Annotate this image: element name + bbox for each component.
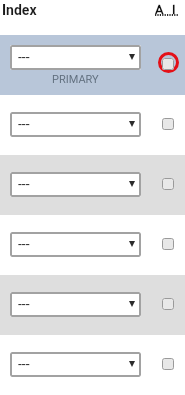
button[interactable]: Select row [155, 51, 181, 77]
button[interactable]: Select row [155, 351, 181, 377]
button[interactable]: --- [10, 232, 141, 257]
button[interactable]: --- [10, 172, 141, 197]
staticText: PRIMARY [52, 73, 99, 86]
staticText: --- [18, 296, 30, 312]
staticText: --- [18, 236, 30, 252]
button[interactable]: --- [0, 95, 185, 155]
staticText: --- [18, 356, 30, 372]
staticText: --- [18, 49, 30, 65]
staticText: I [172, 2, 176, 17]
button[interactable]: Text options [155, 2, 181, 20]
button[interactable]: --- [10, 352, 141, 377]
button[interactable]: Select row [155, 111, 181, 137]
button[interactable]: --- [10, 292, 141, 317]
button[interactable]: Select row [155, 231, 181, 257]
staticText: --- [18, 176, 30, 192]
button[interactable]: --- [0, 335, 185, 395]
button[interactable]: --- [10, 45, 141, 70]
button[interactable]: --- [0, 275, 185, 335]
button[interactable]: Select row [155, 171, 181, 197]
button[interactable]: --- [0, 155, 185, 215]
button[interactable]: --- [0, 215, 185, 275]
button[interactable]: --- [0, 35, 185, 95]
button[interactable]: Select row [155, 291, 181, 317]
staticText: --- [18, 116, 30, 132]
staticText: A [155, 2, 164, 17]
staticText: Index [2, 2, 37, 18]
button[interactable]: --- [10, 112, 141, 137]
